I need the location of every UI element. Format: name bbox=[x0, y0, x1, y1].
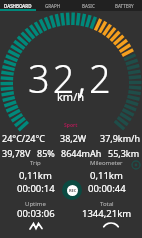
staticText: GRAPH bbox=[45, 3, 61, 9]
staticText: BASIC bbox=[82, 3, 95, 9]
staticText: 0,11km bbox=[90, 169, 123, 182]
staticText: 00:00:14 bbox=[17, 182, 55, 195]
staticText: 8644mAh bbox=[61, 147, 102, 159]
button[interactable]: DASHBOARD bbox=[0, 0, 35, 11]
staticText: Sport bbox=[64, 122, 78, 129]
staticText: 0,11km bbox=[19, 169, 52, 182]
button[interactable]: Reset mileometer bbox=[130, 159, 142, 171]
staticText: Uptime bbox=[25, 200, 46, 208]
staticText: 37,9km/h bbox=[100, 132, 140, 144]
button[interactable]: BASIC bbox=[70, 0, 106, 11]
staticText: 55,3km bbox=[108, 147, 140, 159]
staticText: 85% bbox=[37, 147, 55, 159]
staticText: 38,2W bbox=[60, 132, 87, 144]
staticText: Total bbox=[100, 200, 114, 208]
staticText: km/h bbox=[57, 89, 85, 104]
button[interactable]: BATTERY bbox=[106, 0, 142, 11]
button[interactable]: GRAPH bbox=[35, 0, 70, 11]
staticText: Mileometer bbox=[90, 159, 123, 167]
button[interactable]: Record bbox=[62, 180, 82, 200]
staticText: DASHBOARD bbox=[4, 3, 32, 9]
staticText: 24°C/24°C bbox=[2, 132, 46, 144]
staticText: 1344,21km bbox=[82, 207, 132, 220]
staticText: 00:03:06 bbox=[17, 207, 55, 220]
staticText: BATTERY bbox=[115, 3, 134, 9]
staticText: Trip bbox=[30, 159, 41, 167]
staticText: 32,2 bbox=[28, 52, 114, 104]
staticText: 00:00:44 bbox=[88, 182, 126, 195]
staticText: 39,78V bbox=[2, 147, 31, 159]
staticText: REC bbox=[69, 188, 77, 193]
